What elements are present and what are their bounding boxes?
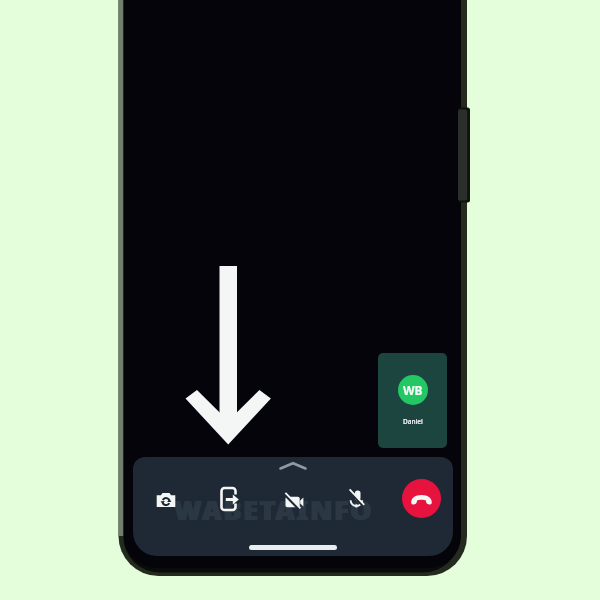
staticText: WABETAINFO [175,492,375,528]
button[interactable]: Your camera preview [378,353,447,448]
button[interactable]: Flip camera [145,479,187,521]
staticText: WB [403,382,423,398]
staticText: Daniel [403,417,423,426]
staticText: WABETAINFO [173,492,373,528]
button[interactable]: Expand controls [279,459,307,475]
button[interactable]: End call [402,479,441,518]
button[interactable]: Share screen [208,478,250,520]
button[interactable]: Mute microphone [335,478,377,520]
button[interactable]: Turn camera off [273,481,315,523]
